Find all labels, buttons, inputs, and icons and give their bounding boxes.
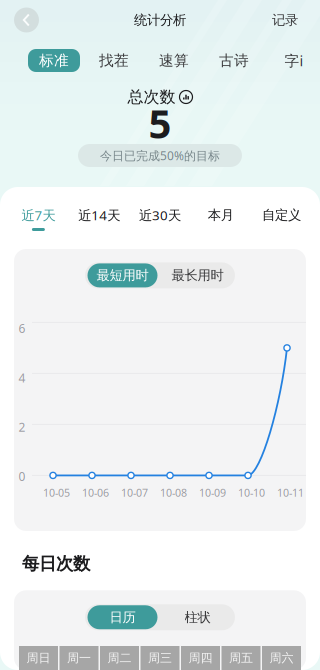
staticText: 近14天 — [78, 206, 120, 224]
staticText: 10-07 — [121, 485, 148, 500]
staticText: 10-10 — [238, 485, 265, 500]
staticText: 柱状 — [184, 609, 210, 625]
button[interactable]: 今日已完成50%的目标 — [78, 144, 242, 167]
button[interactable]: 本月 — [190, 187, 251, 249]
button[interactable]: 标准 — [28, 49, 80, 72]
staticText: 找茬 — [99, 51, 129, 69]
button[interactable]: 近30天 — [130, 187, 190, 249]
staticText: 字i — [284, 51, 303, 70]
button[interactable]: 记录 — [264, 12, 320, 28]
staticText: 0 — [18, 468, 25, 484]
button[interactable]: 古诗 — [208, 49, 260, 72]
staticText: 近30天 — [139, 206, 181, 224]
button[interactable]: 最长用时 — [160, 262, 235, 288]
staticText: 记录 — [272, 12, 298, 28]
staticText: 10-09 — [199, 485, 226, 500]
staticText: 周二 — [107, 651, 131, 665]
staticText: 今日已完成50%的目标 — [100, 147, 220, 163]
staticText: 古诗 — [219, 51, 249, 69]
staticText: 统计分析 — [134, 12, 186, 28]
staticText: 6 — [18, 320, 25, 336]
staticText: 最短用时 — [96, 267, 148, 284]
staticText: 10-06 — [82, 485, 109, 500]
button[interactable]: 自定义 — [251, 187, 312, 249]
staticText: 本月 — [208, 207, 234, 223]
staticText: 周三 — [148, 651, 172, 665]
staticText: 周五 — [229, 651, 253, 665]
staticText: 2 — [18, 419, 25, 435]
button[interactable]: 速算 — [148, 49, 200, 72]
staticText: 周六 — [269, 651, 293, 665]
staticText: 总次数 — [127, 87, 175, 107]
button[interactable]: 字i — [268, 49, 320, 72]
staticText: 每日次数 — [22, 553, 90, 574]
staticText: 周日 — [26, 651, 50, 665]
staticText: 10-05 — [43, 485, 70, 500]
button[interactable]: 近14天 — [69, 187, 130, 249]
button[interactable]: 柱状 — [160, 604, 235, 630]
staticText: 日历 — [109, 609, 135, 625]
button[interactable]: 近7天 — [8, 187, 69, 249]
staticText: 近7天 — [21, 206, 55, 224]
staticText: 速算 — [159, 51, 189, 69]
staticText: 4 — [18, 370, 25, 386]
staticText: 最长用时 — [171, 267, 223, 284]
staticText: 5 — [148, 96, 171, 149]
staticText: 10-08 — [160, 485, 187, 500]
staticText: 周一 — [67, 651, 91, 665]
staticText: 标准 — [39, 51, 69, 69]
button[interactable]: 返回 — [0, 7, 45, 32]
staticText: 自定义 — [262, 207, 301, 223]
staticText: 10-11 — [277, 485, 304, 500]
staticText: 周四 — [188, 651, 212, 665]
button[interactable]: 最短用时 — [85, 262, 160, 288]
button[interactable]: 日历 — [85, 604, 160, 630]
button[interactable]: 找茬 — [88, 49, 140, 72]
